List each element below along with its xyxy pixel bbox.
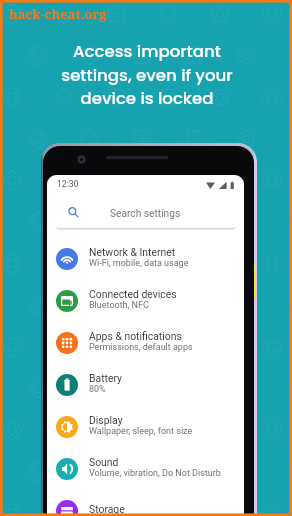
button[interactable]: Network & Internet	[47, 238, 244, 280]
staticText: Battery	[89, 372, 122, 384]
button[interactable]: Sound	[47, 448, 244, 490]
other: Status icons	[206, 181, 234, 189]
staticText: Search settings	[110, 208, 181, 220]
other: Search	[68, 207, 79, 218]
staticText: Access important settings, even if your …	[1, 40, 292, 110]
staticText: Volume, vibration, Do Not Disturb	[89, 468, 221, 479]
button[interactable]: Apps & notifications	[47, 322, 244, 364]
staticText: Bluetooth, NFC	[89, 300, 149, 311]
button[interactable]: Connected devices	[47, 280, 244, 322]
staticText: Connected devices	[89, 288, 177, 300]
button[interactable]: Storage	[47, 490, 244, 516]
staticText: Sound	[89, 456, 119, 468]
staticText: Storage	[89, 503, 125, 515]
staticText: Apps & notifications	[89, 330, 182, 342]
staticText: hack-cheat.org	[9, 5, 107, 23]
staticText: Wallpaper, sleep, font size	[89, 426, 193, 437]
staticText: Wi-Fi, mobile, data usage	[89, 258, 189, 269]
staticText: Network & Internet	[89, 246, 176, 258]
staticText: 80%	[89, 384, 106, 395]
staticText: 12:30	[57, 179, 79, 189]
button[interactable]: Search	[56, 200, 236, 229]
staticText: Permissions, default apps	[89, 342, 193, 353]
staticText: Display	[89, 414, 123, 426]
button[interactable]: Display	[47, 406, 244, 448]
button[interactable]: Battery	[47, 364, 244, 406]
